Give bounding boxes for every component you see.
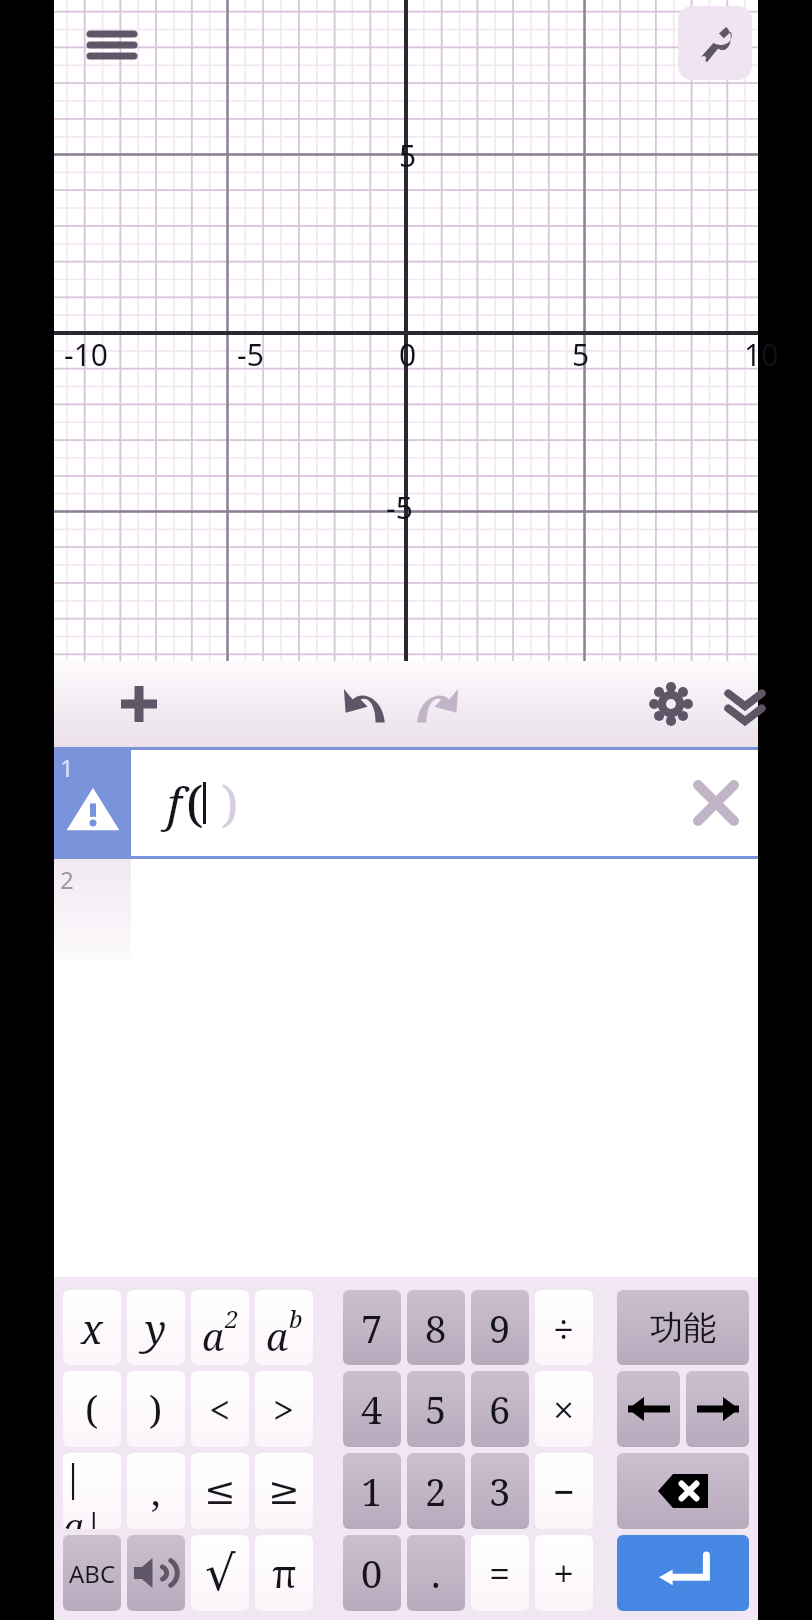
- staticText: ABC: [69, 1557, 116, 1590]
- button[interactable]: Left: [617, 1371, 680, 1447]
- staticText: 5: [572, 334, 590, 375]
- button[interactable]: Right: [686, 1371, 749, 1447]
- button[interactable]: Add expression: [110, 675, 168, 733]
- staticText: 5: [399, 135, 417, 176]
- staticText: -5: [237, 334, 264, 375]
- button[interactable]: Tools: [678, 6, 752, 80]
- staticText: a: [202, 1310, 225, 1362]
- button[interactable]: π: [255, 1535, 313, 1611]
- staticText: -10: [64, 334, 108, 375]
- button[interactable]: 1: [343, 1453, 401, 1529]
- button[interactable]: 2: [407, 1453, 465, 1529]
- button[interactable]: =: [471, 1535, 529, 1611]
- staticText: .: [431, 1547, 441, 1599]
- staticText: 6: [489, 1383, 511, 1435]
- staticText: (: [85, 1383, 99, 1435]
- staticText: 1: [361, 1465, 383, 1517]
- button[interactable]: 8: [407, 1290, 465, 1365]
- button[interactable]: 2: [54, 859, 758, 961]
- button[interactable]: +: [535, 1535, 593, 1611]
- staticText: f: [167, 772, 182, 835]
- staticText: 7: [361, 1302, 383, 1354]
- staticText: +: [553, 1547, 575, 1599]
- button[interactable]: aᵇ: [255, 1290, 313, 1365]
- button[interactable]: Backspace: [617, 1453, 749, 1529]
- button[interactable]: Redo: [408, 675, 466, 733]
- staticText: 5: [425, 1383, 447, 1435]
- staticText: ): [221, 769, 239, 837]
- button[interactable]: x: [63, 1290, 121, 1365]
- staticText: √: [205, 1545, 236, 1601]
- button[interactable]: 5: [407, 1371, 465, 1447]
- button[interactable]: ABC: [63, 1535, 121, 1611]
- button[interactable]: ≥: [255, 1453, 313, 1529]
- button[interactable]: <: [191, 1371, 249, 1447]
- staticText: <: [209, 1383, 231, 1435]
- staticText: >: [273, 1383, 295, 1435]
- button[interactable]: ≤: [191, 1453, 249, 1529]
- staticText: 3: [489, 1465, 511, 1517]
- button[interactable]: 功能: [617, 1290, 749, 1365]
- button[interactable]: 9: [471, 1290, 529, 1365]
- button[interactable]: y: [127, 1290, 185, 1365]
- staticText: −: [553, 1465, 576, 1517]
- button[interactable]: 4: [343, 1371, 401, 1447]
- staticText: 2: [225, 1302, 239, 1335]
- button[interactable]: −: [535, 1453, 593, 1529]
- button[interactable]: 3: [471, 1453, 529, 1529]
- button[interactable]: ×: [535, 1371, 593, 1447]
- staticText: ×: [553, 1383, 575, 1435]
- staticText: 8: [425, 1302, 447, 1354]
- button[interactable]: .: [407, 1535, 465, 1611]
- button[interactable]: a²: [191, 1290, 249, 1365]
- staticText: 0: [361, 1547, 383, 1599]
- button[interactable]: ÷: [535, 1290, 593, 1365]
- staticText: b: [289, 1302, 303, 1335]
- staticText: ): [149, 1383, 163, 1435]
- staticText: 2: [425, 1465, 447, 1517]
- staticText: ≥: [268, 1469, 300, 1513]
- button[interactable]: √: [191, 1535, 249, 1611]
- button[interactable]: Menu: [78, 12, 146, 80]
- staticText: ,: [151, 1465, 161, 1517]
- staticText: 4: [361, 1383, 383, 1435]
- staticText: y: [145, 1301, 167, 1355]
- staticText: 9: [489, 1302, 511, 1354]
- button[interactable]: |a|: [63, 1453, 121, 1529]
- staticText: (: [186, 769, 204, 837]
- staticText: =: [489, 1547, 511, 1599]
- button[interactable]: 7: [343, 1290, 401, 1365]
- staticText: 10: [744, 334, 779, 375]
- staticText: 2: [60, 863, 74, 896]
- button[interactable]: 0: [343, 1535, 401, 1611]
- button[interactable]: 1: [54, 747, 758, 859]
- staticText: 1: [60, 751, 74, 784]
- staticText: 功能: [650, 1307, 716, 1349]
- button[interactable]: Undo: [336, 675, 394, 733]
- button[interactable]: ,: [127, 1453, 185, 1529]
- staticText: ≤: [204, 1469, 236, 1513]
- button[interactable]: 6: [471, 1371, 529, 1447]
- staticText: a: [266, 1310, 289, 1362]
- staticText: ÷: [553, 1302, 575, 1354]
- button[interactable]: Delete expression: [688, 775, 744, 831]
- button[interactable]: >: [255, 1371, 313, 1447]
- staticText: |a|: [63, 1453, 121, 1529]
- button[interactable]: (: [63, 1371, 121, 1447]
- staticText: x: [81, 1301, 103, 1355]
- staticText: π: [272, 1547, 297, 1599]
- button[interactable]: ): [127, 1371, 185, 1447]
- button[interactable]: Enter: [617, 1535, 749, 1611]
- button[interactable]: Sound: [127, 1535, 185, 1611]
- button[interactable]: Collapse: [716, 675, 774, 733]
- staticText: 0: [399, 334, 417, 375]
- staticText: -5: [386, 487, 413, 528]
- button[interactable]: Settings: [642, 675, 700, 733]
